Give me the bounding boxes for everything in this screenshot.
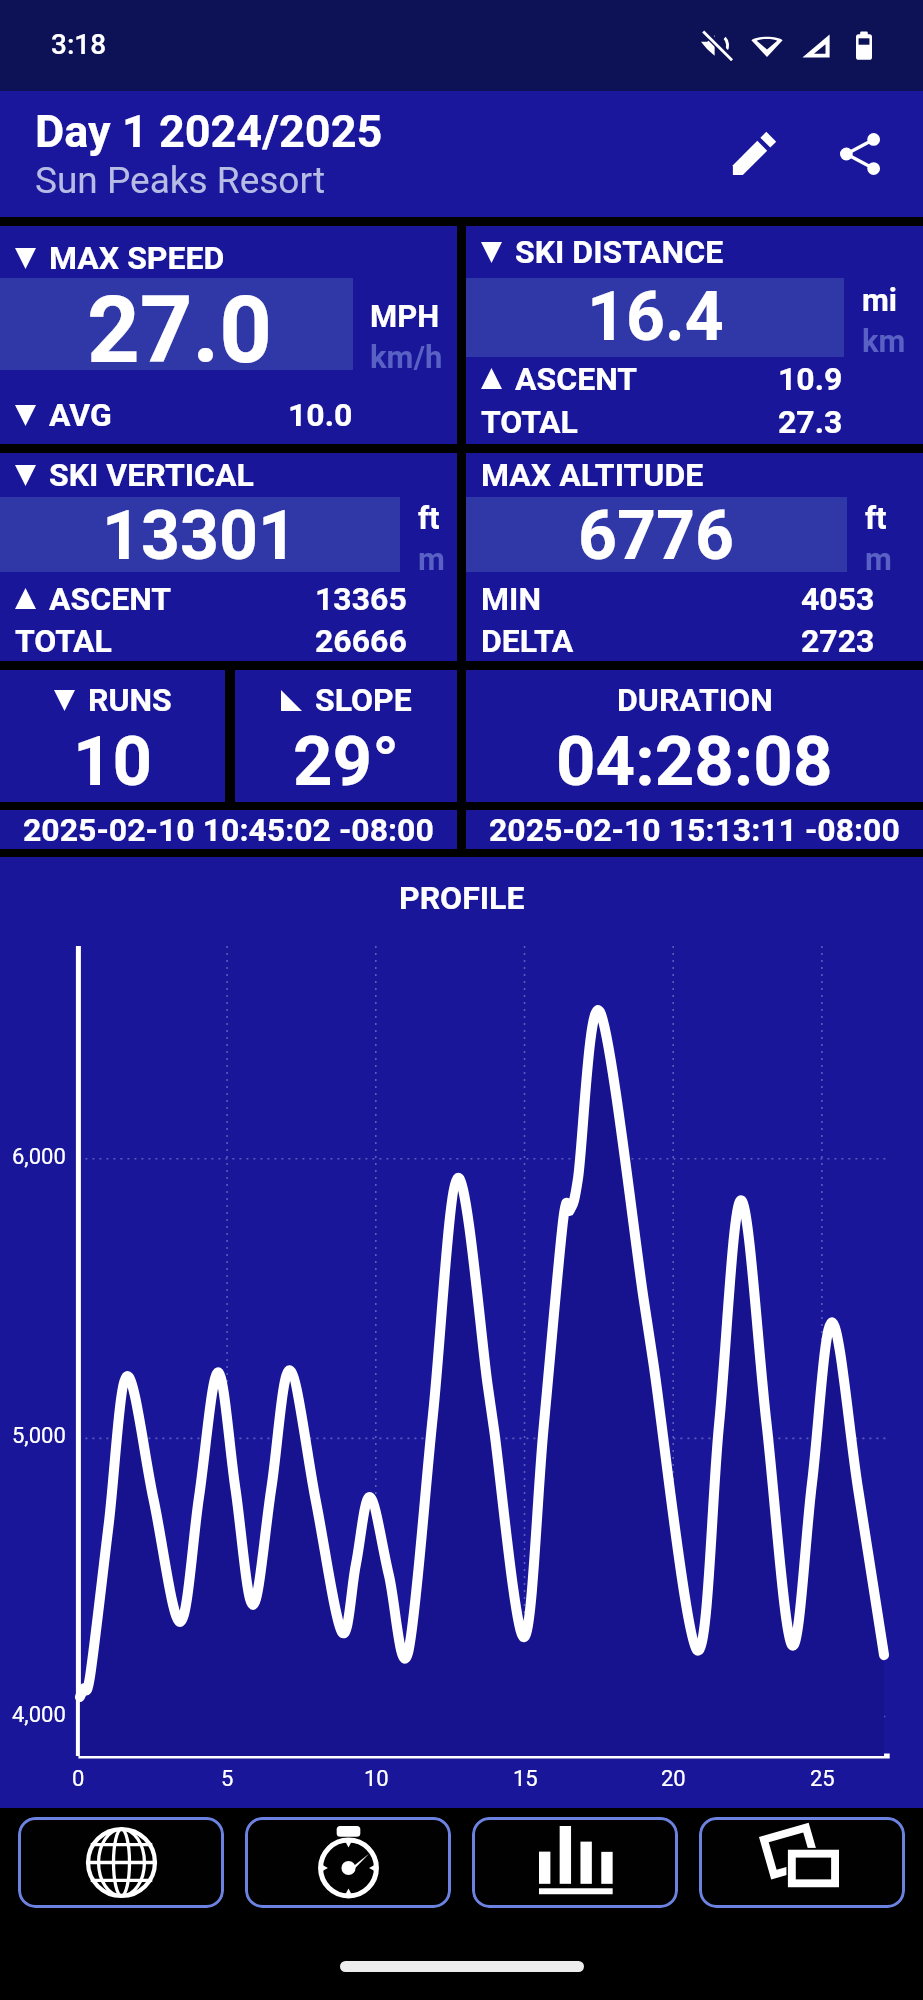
staticText: 0 (72, 1766, 85, 1792)
staticText: MAX ALTITUDE (481, 456, 704, 494)
staticText: mi (862, 282, 898, 318)
staticText: TOTAL (15, 622, 112, 660)
staticText: 10.0 (288, 396, 353, 434)
staticText: 29° (293, 721, 399, 802)
staticText: 20 (661, 1766, 686, 1792)
staticText: 4,000 (12, 1702, 66, 1728)
staticText: Day 1 2024/2025 (35, 105, 383, 158)
button[interactable]: RUNS (0, 670, 225, 802)
staticText: AVG (49, 396, 112, 434)
staticText: 4053 (801, 580, 875, 616)
button[interactable]: DURATION (466, 670, 923, 802)
staticText: km/h (370, 339, 443, 370)
button[interactable]: MAX ALTITUDE (466, 453, 923, 661)
staticText: 10.9 (778, 360, 843, 398)
staticText: 15 (513, 1766, 538, 1792)
staticText: MPH (370, 298, 440, 334)
staticText: ASCENT (515, 360, 638, 398)
button[interactable]: Photos (699, 1817, 905, 1908)
staticText: 26666 (315, 622, 407, 660)
staticText: Sun Peaks Resort (35, 159, 326, 202)
staticText: 04:28:08 (556, 721, 833, 802)
staticText: 3:18 (51, 28, 107, 61)
staticText: 27.0 (87, 277, 273, 369)
staticText: SLOPE (315, 681, 412, 719)
staticText: 25 (810, 1766, 835, 1792)
staticText: 5 (221, 1766, 234, 1792)
staticText: SKI VERTICAL (49, 456, 254, 494)
button[interactable]: SKI DISTANCE (466, 226, 923, 444)
staticText: DURATION (617, 681, 773, 719)
staticText: 10 (73, 721, 153, 802)
staticText: PROFILE (399, 879, 525, 917)
staticText: ASCENT (49, 580, 172, 616)
staticText: ft (865, 500, 887, 536)
staticText: 10 (364, 1766, 389, 1792)
button[interactable]: Stopwatch (245, 1817, 451, 1908)
staticText: MAX SPEED (49, 239, 225, 277)
button[interactable]: MAX SPEED (0, 226, 457, 444)
staticText: 13301 (102, 496, 298, 571)
staticText: MIN (481, 580, 541, 616)
button[interactable]: SKI VERTICAL (0, 453, 457, 661)
staticText: km (862, 323, 906, 357)
button[interactable]: Share (817, 111, 903, 197)
staticText: 2025-02-10 15:13:11 -08:00 (489, 811, 900, 849)
staticText: ft (418, 500, 440, 536)
staticText: 27.3 (778, 403, 843, 441)
staticText: 5,000 (12, 1423, 66, 1449)
staticText: DELTA (481, 622, 574, 660)
button[interactable]: Statistics (472, 1817, 678, 1908)
staticText: 2723 (801, 622, 875, 660)
staticText: 6,000 (12, 1144, 66, 1170)
staticText: SKI DISTANCE (515, 233, 724, 271)
staticText: RUNS (88, 681, 172, 719)
button[interactable]: Edit (711, 111, 797, 197)
button[interactable]: Map (18, 1817, 224, 1908)
staticText: 13365 (315, 580, 407, 616)
button[interactable]: 2025-02-10 15:13:11 -08:00 (466, 810, 923, 849)
staticText: 2025-02-10 10:45:02 -08:00 (23, 811, 434, 849)
button[interactable]: 2025-02-10 10:45:02 -08:00 (0, 810, 457, 849)
staticText: m (418, 541, 445, 572)
staticText: TOTAL (481, 403, 578, 441)
staticText: 6776 (578, 496, 735, 571)
staticText: 16.4 (587, 277, 724, 356)
staticText: m (865, 541, 892, 572)
button[interactable]: SLOPE (235, 670, 457, 802)
